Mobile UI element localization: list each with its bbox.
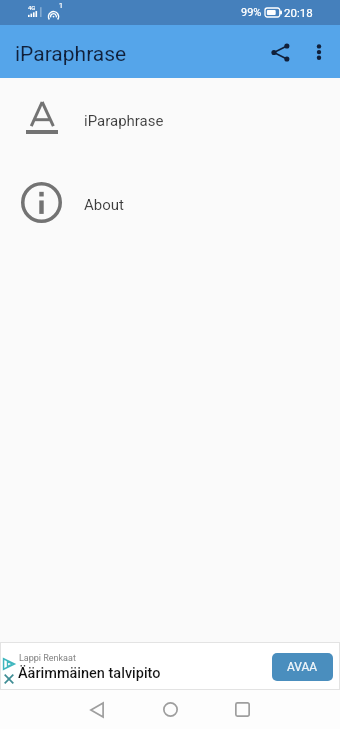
staticText: iParaphrase [84, 112, 164, 130]
button[interactable]: Home [148, 691, 192, 728]
button[interactable]: Lappi Renkaat [1, 643, 339, 689]
button[interactable]: Back [75, 691, 119, 728]
button[interactable]: iParaphrase [0, 76, 340, 160]
button[interactable]: AVAA [272, 653, 333, 681]
button[interactable]: About [0, 160, 340, 244]
staticText: About [84, 196, 124, 214]
button[interactable]: Share [258, 30, 302, 74]
staticText: AVAA [287, 660, 318, 674]
staticText: Lappi Renkaat [19, 653, 76, 664]
staticText: iParaphrase [15, 42, 127, 67]
staticText: 99% [241, 6, 262, 19]
staticText: 4G [28, 4, 36, 11]
button[interactable]: More options [297, 30, 340, 74]
staticText: 1 [59, 2, 63, 10]
button[interactable]: Recents [220, 691, 264, 728]
staticText: 20:18 [284, 6, 313, 19]
staticText: Äärimmäinen talvipito [18, 665, 161, 682]
